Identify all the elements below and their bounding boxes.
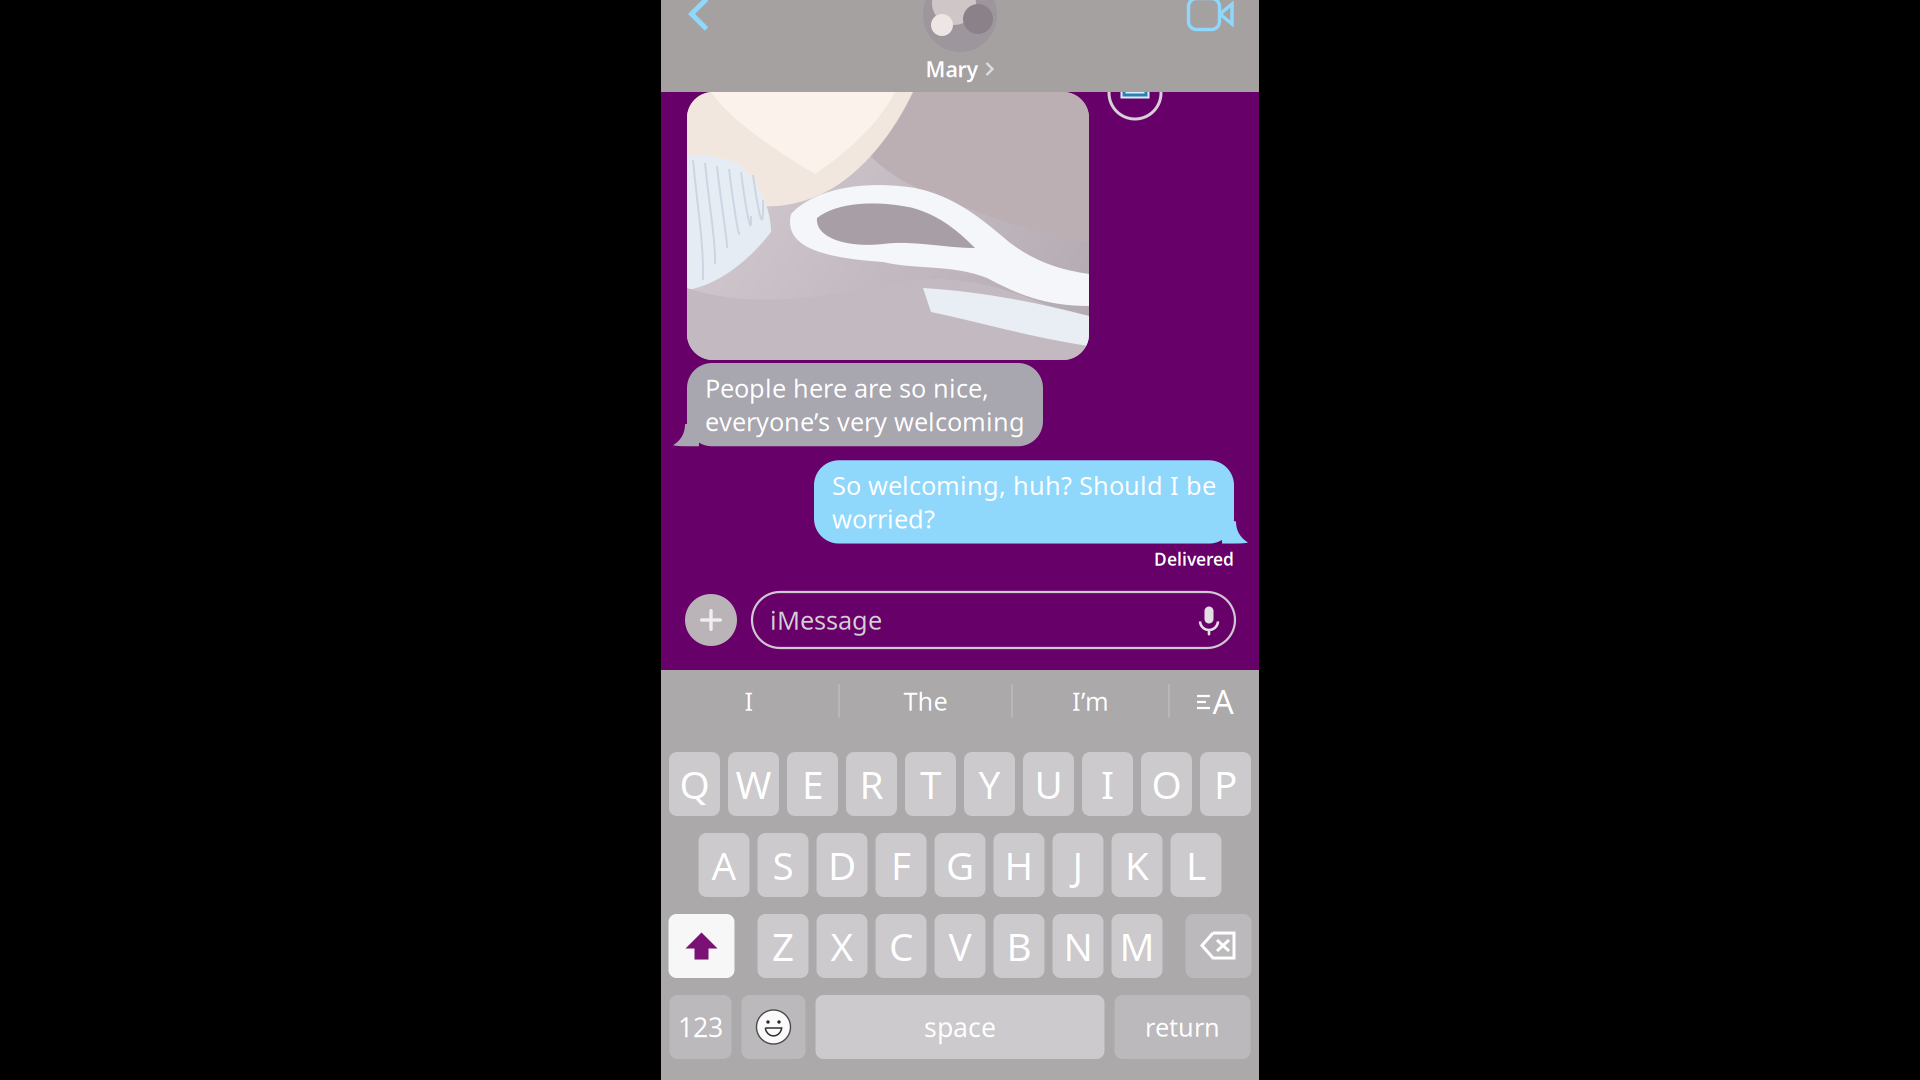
button[interactable]: I [1082,752,1133,816]
staticText: 123 [678,1009,723,1045]
button[interactable]: Add attachment [685,594,737,646]
button[interactable]: Y [964,752,1015,816]
staticText: People here are so nice, everyone’s very… [705,371,1025,438]
staticText: return [1145,1010,1220,1044]
staticText: U [1034,758,1062,810]
button[interactable]: Mary [925,54,994,84]
button[interactable]: Delete [1185,914,1251,978]
button[interactable]: T [905,752,956,816]
button[interactable]: B [993,914,1044,978]
button[interactable]: Q [669,752,720,816]
staticText: D [828,839,856,891]
button[interactable]: L [1170,833,1221,897]
staticText: T [920,758,941,810]
button[interactable]: Back [671,0,727,35]
button[interactable]: I [660,670,838,732]
button[interactable]: O [1141,752,1192,816]
staticText: V [948,920,971,972]
staticText: S [772,839,793,891]
staticText: M [1119,920,1154,972]
staticText: O [1151,758,1181,810]
button[interactable]: A [698,833,749,897]
staticText: B [1006,920,1031,972]
button[interactable]: H [993,833,1044,897]
button[interactable]: Emoji keyboard [741,995,805,1059]
staticText: N [1063,920,1092,972]
button[interactable]: R [846,752,897,816]
button[interactable]: G [934,833,985,897]
button[interactable]: D [816,833,867,897]
button[interactable]: U [1023,752,1074,816]
button[interactable]: E [787,752,838,816]
staticText: Q [679,758,709,810]
staticText: E [802,758,823,810]
staticText: iMessage [770,603,882,637]
button[interactable]: The [840,670,1011,732]
staticText: X [830,920,853,972]
staticText: I [744,684,753,718]
staticText: So welcoming, huh? Should I be worried? [832,468,1216,536]
staticText: G [946,839,974,891]
button[interactable]: I’m [1013,670,1168,732]
staticText: A [1212,679,1233,723]
button[interactable]: K [1111,833,1162,897]
button[interactable]: space [815,995,1104,1059]
staticText: Delivered [1154,548,1234,571]
staticText: The [903,684,947,718]
staticText: I [1101,758,1114,810]
button[interactable]: FaceTime [1183,0,1239,35]
button[interactable]: C [875,914,926,978]
button[interactable]: J [1052,833,1103,897]
button[interactable]: Z [757,914,808,978]
staticText: I’m [1072,684,1109,718]
staticText: P [1214,758,1237,810]
staticText: Z [772,920,794,972]
button[interactable]: Shift [668,914,734,978]
button[interactable]: M [1111,914,1162,978]
staticText: H [1004,839,1033,891]
button[interactable]: F [875,833,926,897]
staticText: F [891,839,911,891]
button[interactable]: N [1052,914,1103,978]
staticText: C [889,920,913,972]
staticText: Y [978,758,1000,810]
staticText: W [735,758,771,810]
button[interactable]: P [1200,752,1251,816]
staticText: Mary [925,55,978,83]
staticText: K [1125,839,1149,891]
button[interactable]: X [816,914,867,978]
staticText: R [859,758,883,810]
staticText: L [1186,839,1206,891]
staticText: space [924,1009,996,1045]
button[interactable]: S [757,833,808,897]
button[interactable]: Formatting options [1170,670,1260,732]
button[interactable]: W [728,752,779,816]
staticText: J [1072,839,1083,891]
staticText: A [711,839,736,891]
button[interactable]: V [934,914,985,978]
button[interactable]: 123 [669,995,731,1059]
button[interactable]: return [1114,995,1250,1059]
